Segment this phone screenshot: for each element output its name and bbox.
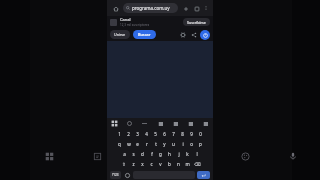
- staticText: m: [185, 161, 190, 167]
- button[interactable]: t: [151, 140, 160, 148]
- button[interactable]: n: [174, 160, 183, 168]
- button[interactable]: c: [147, 160, 156, 168]
- staticText: k: [186, 151, 189, 157]
- staticText: ⌫: [194, 162, 201, 167]
- staticText: w: [127, 141, 131, 147]
- button[interactable]: q: [115, 140, 124, 148]
- button[interactable]: Suscribirse: [183, 18, 210, 26]
- button[interactable]: 5: [151, 130, 160, 138]
- button[interactable]: All apps: [36, 143, 62, 169]
- staticText: Buscar: [138, 32, 151, 37]
- button[interactable]: i: [178, 140, 187, 148]
- button[interactable]: ⇧: [118, 160, 129, 168]
- button[interactable]: Key tool 3: [172, 120, 179, 127]
- button[interactable]: Unirse: [110, 30, 130, 39]
- button[interactable]: 3: [133, 130, 142, 138]
- button[interactable]: z: [129, 160, 138, 168]
- button[interactable]: Play: [200, 30, 210, 40]
- staticText: 12,3 mil suscriptores: [120, 23, 150, 27]
- button[interactable]: y: [160, 140, 169, 148]
- button[interactable]: Key tool 0: [126, 120, 133, 127]
- staticText: r: [146, 141, 148, 147]
- button[interactable]: 0: [196, 130, 205, 138]
- button[interactable]: Tabs: [191, 3, 202, 14]
- staticText: 1: [118, 131, 121, 137]
- staticText: ⇧: [122, 162, 126, 167]
- staticText: z: [132, 161, 135, 167]
- button[interactable]: 7: [169, 130, 178, 138]
- button[interactable]: Theme: [232, 143, 258, 169]
- button[interactable]: programa.com.uy: [123, 3, 178, 13]
- staticText: s: [132, 151, 135, 157]
- staticText: p: [199, 141, 202, 147]
- button[interactable]: x: [138, 160, 147, 168]
- button[interactable]: Settings: [178, 30, 187, 39]
- button[interactable]: Voice search: [280, 143, 306, 169]
- staticText: ?123: [112, 173, 119, 177]
- staticText: programa.com.uy: [132, 5, 170, 11]
- button[interactable]: Home: [110, 3, 121, 14]
- button[interactable]: 6: [160, 130, 169, 138]
- staticText: a: [123, 151, 126, 157]
- staticText: 9: [190, 131, 193, 137]
- button[interactable]: w: [124, 140, 133, 148]
- staticText: u: [172, 141, 175, 147]
- button[interactable]: f: [147, 150, 156, 158]
- staticText: j: [178, 151, 180, 157]
- button[interactable]: h: [165, 150, 174, 158]
- button[interactable]: k: [183, 150, 192, 158]
- button[interactable]: Key tool 2: [157, 120, 164, 127]
- button[interactable]: p: [196, 140, 205, 148]
- staticText: b: [168, 161, 171, 167]
- staticText: 6: [163, 131, 166, 137]
- button[interactable]: j: [174, 150, 183, 158]
- button[interactable]: r: [142, 140, 151, 148]
- button[interactable]: d: [138, 150, 147, 158]
- button[interactable]: Buscar: [133, 30, 156, 39]
- staticText: Suscribirse: [187, 20, 206, 25]
- button[interactable]: Key tool 4: [187, 120, 194, 127]
- staticText: o: [190, 141, 193, 147]
- button[interactable]: v: [156, 160, 165, 168]
- button[interactable]: u: [169, 140, 178, 148]
- staticText: t: [155, 141, 157, 147]
- staticText: i: [182, 141, 184, 147]
- button[interactable]: Key tool 5: [202, 120, 209, 127]
- staticText: d: [141, 151, 144, 157]
- button[interactable]: Key tool 1: [141, 120, 148, 127]
- button[interactable]: Screenshot: [84, 143, 110, 169]
- button[interactable]: More options: [202, 4, 210, 12]
- button[interactable]: m: [183, 160, 192, 168]
- staticText: v: [159, 161, 162, 167]
- button[interactable]: Canal: [107, 16, 213, 28]
- button[interactable]: 9: [187, 130, 196, 138]
- button[interactable]: s: [129, 150, 138, 158]
- button[interactable]: g: [156, 150, 165, 158]
- button[interactable]: Enter: [197, 171, 210, 179]
- button[interactable]: l: [192, 150, 201, 158]
- staticText: 7: [172, 131, 175, 137]
- button[interactable]: Emoji: [123, 171, 131, 179]
- staticText: f: [151, 151, 153, 157]
- button[interactable]: Keyboard options: [111, 120, 118, 127]
- button[interactable]: ?123: [110, 171, 121, 179]
- button[interactable]: b: [165, 160, 174, 168]
- button[interactable]: 8: [178, 130, 187, 138]
- staticText: 4: [145, 131, 148, 137]
- button[interactable]: a: [120, 150, 129, 158]
- button[interactable]: 1: [115, 130, 124, 138]
- button[interactable]: 2: [124, 130, 133, 138]
- staticText: Unirse: [114, 32, 126, 37]
- button[interactable]: New tab: [180, 3, 191, 14]
- button[interactable]: o: [187, 140, 196, 148]
- staticText: y: [163, 141, 166, 147]
- button[interactable]: Share: [189, 30, 198, 39]
- button[interactable]: ⌫: [192, 160, 203, 168]
- staticText: 0: [199, 131, 202, 137]
- staticText: h: [168, 151, 171, 157]
- button[interactable]: e: [133, 140, 142, 148]
- staticText: e: [136, 141, 139, 147]
- staticText: Canal: [120, 17, 131, 22]
- button[interactable]: 4: [142, 130, 151, 138]
